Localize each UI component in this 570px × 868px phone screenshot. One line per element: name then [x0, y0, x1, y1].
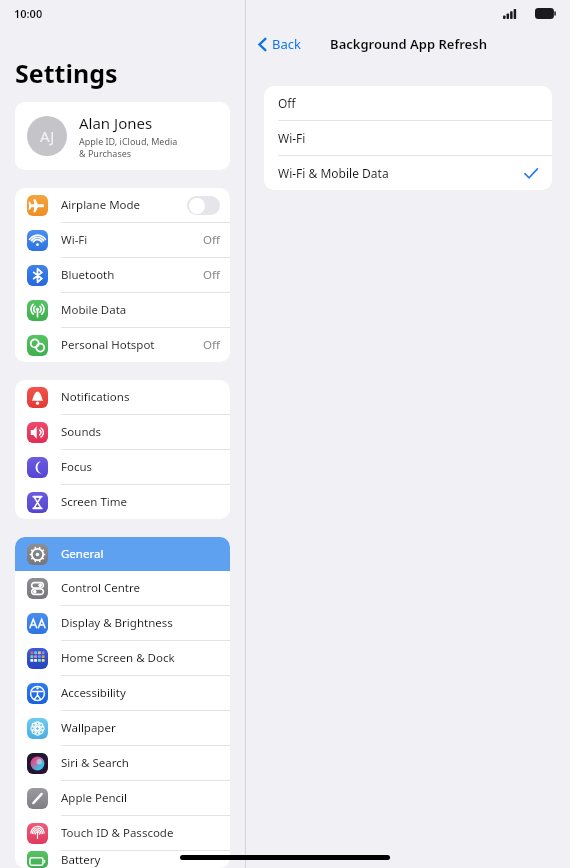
button[interactable]: Focus: [15, 450, 230, 484]
button[interactable]: Sounds: [15, 415, 230, 449]
staticText: Home Screen & Dock: [61, 650, 220, 666]
staticText: Screen Time: [61, 494, 220, 510]
staticText: Accessibility: [61, 685, 220, 701]
staticText: 10:00: [14, 6, 43, 21]
button[interactable]: Wallpaper: [15, 711, 230, 745]
staticText: Control Centre: [61, 580, 220, 596]
staticText: Off: [203, 232, 220, 248]
button[interactable]: Notifications: [15, 380, 230, 414]
staticText: Settings: [15, 56, 118, 90]
button[interactable]: Back: [258, 35, 301, 53]
staticText: Wi-Fi: [278, 130, 538, 146]
staticText: Notifications: [61, 389, 220, 405]
staticText: Wallpaper: [61, 720, 220, 736]
staticText: Mobile Data: [61, 302, 220, 318]
staticText: General: [61, 546, 220, 562]
staticText: Off: [203, 267, 220, 283]
button[interactable]: Apple Pencil: [15, 781, 230, 815]
button[interactable]: General: [15, 537, 230, 571]
staticText: Airplane Mode: [61, 197, 187, 213]
staticText: Apple Pencil: [61, 790, 220, 806]
button[interactable]: Wi-Fi: [264, 121, 552, 155]
staticText: AJ: [40, 126, 55, 146]
staticText: Wi-Fi & Mobile Data: [278, 165, 524, 181]
staticText: Off: [203, 337, 220, 353]
button[interactable]: Battery: [15, 851, 230, 868]
button[interactable]: Control Centre: [15, 571, 230, 605]
staticText: & Purchases: [79, 147, 132, 159]
staticText: Alan Jones: [79, 113, 153, 133]
button[interactable]: Bluetooth: [15, 258, 230, 292]
button[interactable]: Wi-Fi & Mobile Data: [264, 156, 552, 190]
button[interactable]: Personal Hotspot: [15, 328, 230, 362]
staticText: Bluetooth: [61, 267, 203, 283]
button[interactable]: Wi-Fi: [15, 223, 230, 257]
button[interactable]: Airplane Mode: [15, 188, 230, 222]
staticText: Personal Hotspot: [61, 337, 203, 353]
button[interactable]: Siri & Search: [15, 746, 230, 780]
button[interactable]: Display & Brightness: [15, 606, 230, 640]
button[interactable]: Off: [264, 86, 552, 120]
button[interactable]: Mobile Data: [15, 293, 230, 327]
button[interactable]: Screen Time: [15, 485, 230, 519]
button[interactable]: Home Screen & Dock: [15, 641, 230, 675]
staticText: Wi-Fi: [61, 232, 203, 248]
staticText: Off: [278, 95, 538, 111]
staticText: Siri & Search: [61, 755, 220, 771]
button[interactable]: Touch ID & Passcode: [15, 816, 230, 850]
staticText: Touch ID & Passcode: [61, 825, 220, 841]
staticText: Apple ID, iCloud, Media: [79, 135, 178, 147]
button[interactable]: Accessibility: [15, 676, 230, 710]
staticText: Display & Brightness: [61, 615, 220, 631]
staticText: Background App Refresh: [330, 35, 487, 53]
button[interactable]: Airplane Mode toggle: [187, 196, 220, 215]
staticText: Focus: [61, 459, 220, 475]
staticText: Battery: [61, 852, 220, 868]
button[interactable]: AJ: [15, 102, 230, 170]
staticText: Back: [272, 35, 301, 53]
staticText: Sounds: [61, 424, 220, 440]
